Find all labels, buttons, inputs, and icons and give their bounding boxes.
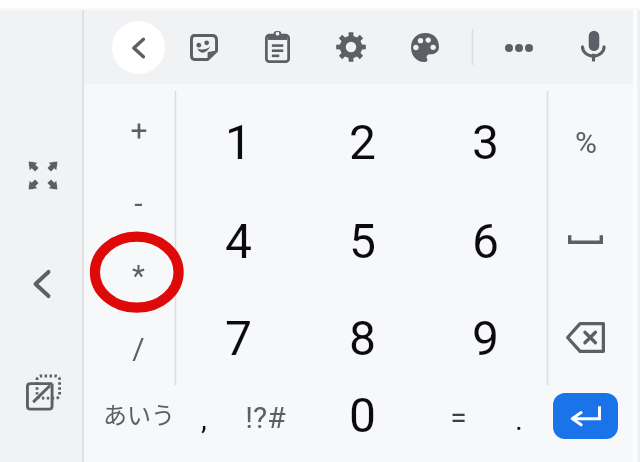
button[interactable]: Space — [568, 235, 603, 244]
button[interactable]: Voice input — [582, 30, 606, 63]
button[interactable]: 0 — [300, 376, 424, 453]
staticText: 8 — [349, 310, 376, 366]
button[interactable]: Stickers — [190, 34, 218, 61]
button[interactable]: Back — [112, 21, 165, 74]
button[interactable]: !?# — [234, 379, 296, 456]
staticText: . — [515, 402, 523, 437]
button[interactable]: - — [101, 154, 175, 252]
staticText: , — [201, 401, 207, 436]
button[interactable]: Backspace — [566, 322, 605, 353]
staticText: 2 — [349, 114, 376, 170]
staticText: 5 — [349, 213, 376, 269]
button[interactable]: Settings — [336, 32, 366, 62]
button[interactable]: 6 — [423, 192, 547, 290]
staticText: 0 — [349, 387, 376, 443]
button[interactable]: 9 — [423, 289, 547, 387]
button[interactable]: 5 — [300, 192, 424, 290]
staticText: あいう — [103, 396, 175, 431]
button[interactable]: Themes — [411, 33, 439, 62]
staticText: 7 — [225, 310, 252, 366]
button[interactable]: . — [488, 381, 550, 458]
button[interactable]: 3 — [423, 93, 547, 191]
staticText: 4 — [225, 213, 252, 269]
staticText: = — [450, 400, 467, 435]
button[interactable]: 4 — [176, 192, 300, 290]
staticText: % — [575, 125, 597, 160]
button[interactable]: More options — [505, 44, 533, 52]
button[interactable]: + — [102, 81, 176, 179]
button[interactable]: / — [101, 299, 175, 397]
button[interactable]: Enter — [553, 393, 618, 439]
button[interactable]: 8 — [300, 289, 424, 387]
button[interactable]: Expand keyboard — [28, 161, 58, 190]
button[interactable]: 7 — [176, 289, 300, 387]
button[interactable]: * — [101, 226, 175, 324]
button[interactable]: Back — [33, 270, 51, 298]
staticText: 1 — [225, 114, 252, 170]
button[interactable]: = — [427, 379, 489, 456]
staticText: + — [130, 113, 148, 148]
staticText: !?# — [245, 400, 286, 435]
staticText: 9 — [472, 310, 499, 366]
staticText: / — [132, 331, 145, 366]
staticText: 3 — [472, 114, 499, 170]
button[interactable]: 2 — [300, 93, 424, 191]
staticText: - — [134, 186, 143, 221]
button[interactable]: Clipboard — [265, 31, 290, 63]
button[interactable]: % — [547, 93, 624, 191]
button[interactable]: 1 — [176, 93, 300, 191]
button[interactable]: Floating keyboard — [26, 375, 61, 410]
button[interactable]: , — [173, 380, 235, 457]
staticText: 6 — [472, 213, 499, 269]
staticText: * — [132, 258, 145, 293]
button[interactable]: あいう — [102, 375, 176, 452]
